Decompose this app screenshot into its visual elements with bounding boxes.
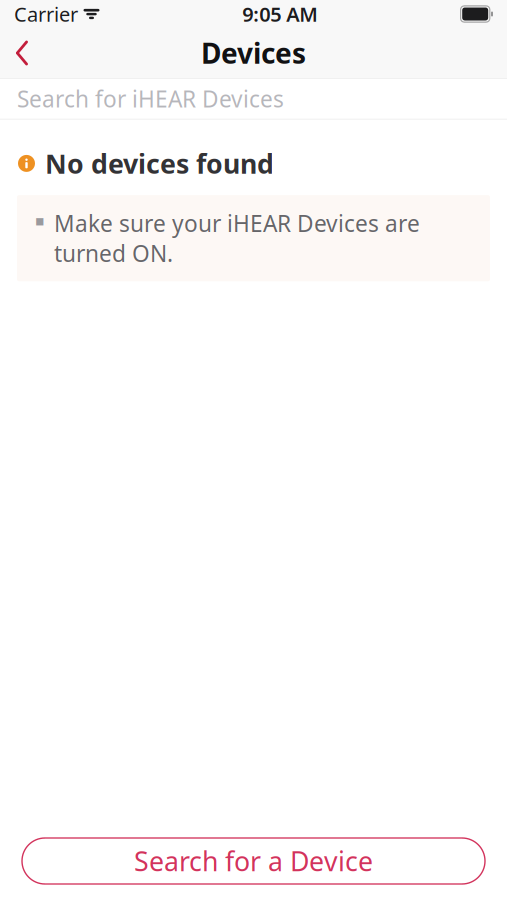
staticText: Search for iHEAR Devices: [17, 84, 284, 114]
button[interactable]: Search for a Device: [22, 838, 485, 884]
staticText: Carrier: [14, 1, 78, 27]
button[interactable]: Back: [0, 31, 44, 75]
staticText: Devices: [201, 34, 306, 72]
staticText: No devices found: [45, 146, 274, 181]
staticText: 9:05 AM: [242, 1, 318, 27]
staticText: Make sure your iHEAR Devices are turned …: [54, 208, 420, 268]
button[interactable]: Search for iHEAR Devices: [0, 79, 507, 119]
staticText: Search for a Device: [134, 843, 373, 879]
staticText: ▪: [35, 212, 45, 229]
